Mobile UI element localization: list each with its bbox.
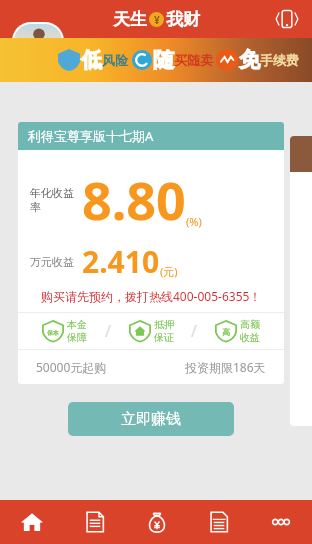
button[interactable]: 立即赚钱	[68, 402, 234, 436]
button[interactable]	[290, 136, 312, 426]
staticText: 低	[81, 47, 102, 73]
button[interactable]: Home	[0, 500, 63, 544]
staticText: (%)	[186, 214, 202, 229]
staticText: 免	[239, 47, 260, 73]
staticText: 风险	[102, 52, 128, 68]
staticText: 投资期限186天	[185, 359, 266, 375]
staticText: 保障	[67, 331, 87, 344]
staticText: 2.410	[82, 241, 160, 282]
staticText: 购买请先预约，拨打热线400-005-6355！	[41, 288, 262, 304]
staticText: (元)	[160, 264, 178, 279]
staticText: ¥	[154, 13, 160, 27]
staticText: 抵押	[154, 318, 174, 331]
staticText: 本金	[67, 318, 87, 331]
staticText: 高额	[240, 318, 260, 331]
staticText: 万元收益	[30, 255, 74, 269]
button[interactable]: 利得宝尊享版十七期A	[18, 122, 284, 384]
button[interactable]: Contact phone	[274, 6, 300, 32]
button[interactable]: Records	[63, 500, 126, 544]
staticText: 保本	[47, 329, 59, 337]
staticText: 收益	[240, 331, 260, 344]
staticText: 天生	[113, 9, 147, 30]
staticText: 利得宝尊享版十七期A	[28, 127, 154, 145]
staticText: 我财	[166, 9, 200, 30]
staticText: 买随卖	[174, 52, 213, 68]
staticText: 8.80	[82, 164, 186, 235]
staticText: 随	[153, 47, 174, 73]
button[interactable]: Money	[126, 500, 188, 544]
staticText: 50000元起购	[36, 359, 107, 375]
staticText: 立即赚钱	[121, 410, 181, 429]
button[interactable]: Profile	[14, 24, 62, 58]
staticText: /	[105, 320, 111, 342]
staticText: 保证	[154, 331, 174, 344]
staticText: /	[191, 320, 197, 342]
button[interactable]: News	[188, 500, 250, 544]
staticText: 高	[222, 327, 230, 337]
staticText: 手续费	[260, 52, 299, 68]
button[interactable]: More	[250, 500, 312, 544]
staticText: 年化收益 率	[30, 186, 74, 214]
